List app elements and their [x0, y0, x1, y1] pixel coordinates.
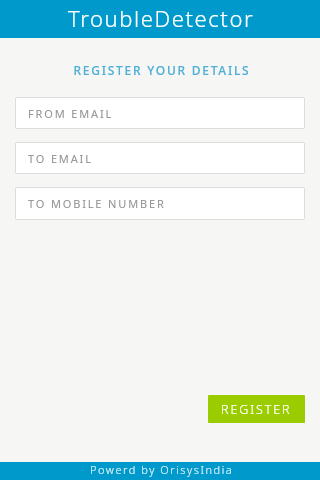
staticText: REGISTER — [221, 401, 292, 418]
button[interactable]: TO MOBILE NUMBER — [15, 187, 305, 220]
button[interactable]: REGISTER — [208, 395, 305, 423]
staticText: TroubleDetector — [68, 3, 255, 33]
staticText: TO MOBILE NUMBER — [28, 196, 166, 211]
button[interactable]: TO EMAIL — [15, 142, 305, 174]
button[interactable]: FROM EMAIL — [15, 97, 305, 129]
staticText: Powerd by OrisysIndia — [90, 462, 234, 477]
staticText: TO EMAIL — [28, 151, 93, 166]
staticText: FROM EMAIL — [28, 106, 114, 121]
staticText: REGISTER YOUR DETAILS — [2, 62, 320, 78]
button[interactable]: Powerd by OrisysIndia — [0, 462, 320, 480]
